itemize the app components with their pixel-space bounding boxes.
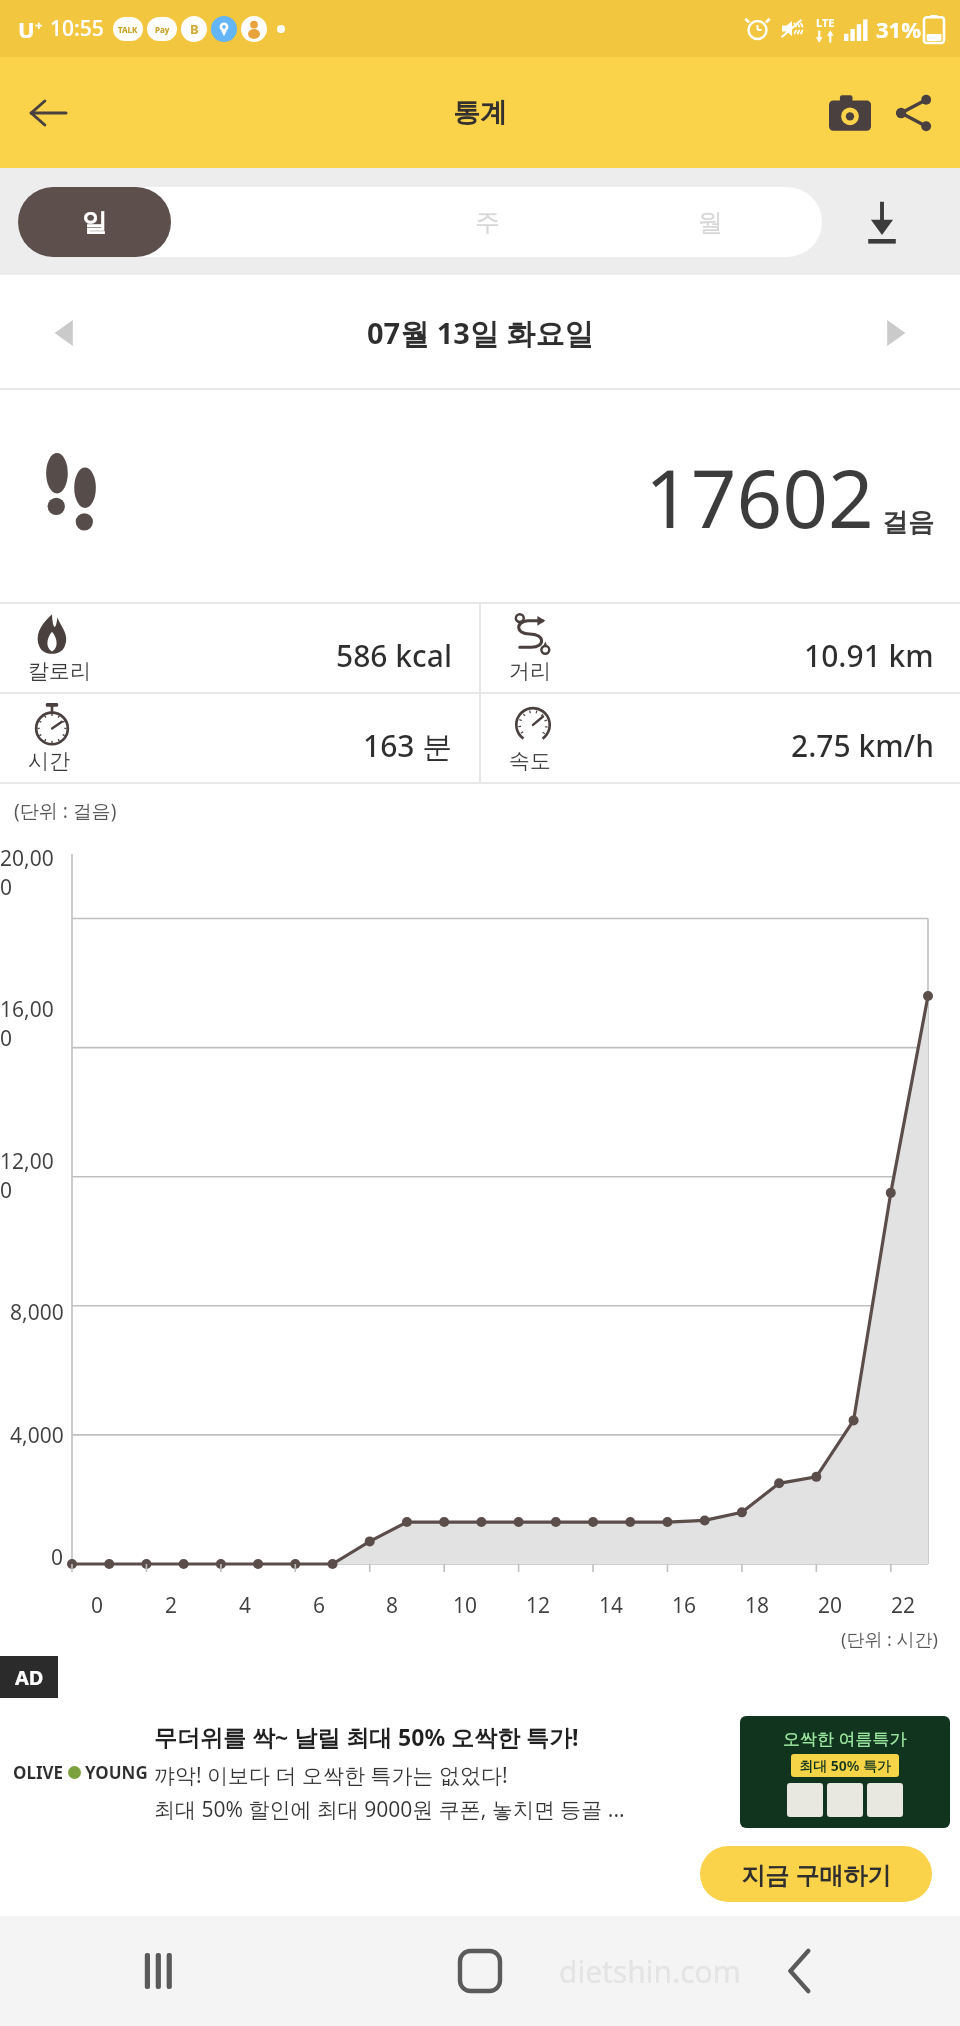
- staticText: 07월 13일 화요일: [367, 313, 594, 353]
- staticText: 4,000: [10, 1421, 64, 1450]
- staticText: B: [190, 20, 199, 38]
- staticText: 칼로리: [28, 658, 91, 684]
- staticText: 10:55: [50, 14, 104, 43]
- staticText: 최대 50% 특가: [799, 1756, 891, 1775]
- button[interactable]: 주: [376, 187, 599, 257]
- button[interactable]: 거리: [481, 604, 960, 692]
- staticText: 오싹한 여름특가: [783, 1727, 907, 1750]
- staticText: 16,000: [0, 995, 64, 1053]
- staticText: 22: [891, 1591, 916, 1620]
- staticText: 586 kcal: [336, 635, 453, 676]
- staticText: 14: [599, 1591, 624, 1620]
- button[interactable]: Previous day: [34, 302, 96, 364]
- staticText: 주: [475, 207, 500, 238]
- staticText: 월: [698, 207, 723, 238]
- button[interactable]: 오싹한 여름특가: [740, 1716, 950, 1828]
- button[interactable]: 일: [153, 187, 376, 257]
- staticText: 걸음: [882, 506, 934, 539]
- staticText: 31%: [876, 14, 922, 44]
- staticText: OLIVE: [13, 1761, 64, 1784]
- staticText: 20: [818, 1591, 843, 1620]
- staticText: Pay: [155, 24, 170, 35]
- button[interactable]: Recents: [0, 1916, 320, 2026]
- staticText: 최대 50% 할인에 최대 9000원 쿠폰, 놓치면 등골 ...: [154, 1795, 625, 1824]
- staticText: 2: [165, 1591, 178, 1620]
- staticText: LTE: [816, 15, 835, 30]
- staticText: 0: [51, 1543, 64, 1572]
- staticText: 꺄악! 이보다 더 오싹한 특가는 없었다!: [154, 1761, 508, 1790]
- button[interactable]: Next day: [864, 302, 926, 364]
- staticText: 통계: [453, 96, 507, 130]
- button[interactable]: Back: [18, 83, 78, 143]
- button[interactable]: Back: [640, 1916, 960, 2026]
- button[interactable]: Home: [320, 1916, 640, 2026]
- staticText: dietshin.com: [559, 1951, 741, 1992]
- staticText: AD: [15, 1664, 44, 1691]
- staticText: TALK: [118, 24, 138, 35]
- button[interactable]: 일: [18, 187, 171, 257]
- staticText: 10: [453, 1591, 478, 1620]
- button[interactable]: Share: [882, 81, 946, 145]
- staticText: 거리: [509, 658, 551, 684]
- staticText: 무더위를 싹~ 날릴 최대 50% 오싹한 특가!: [154, 1721, 579, 1752]
- staticText: 시간: [28, 748, 70, 774]
- button[interactable]: 지금 구매하기: [700, 1846, 932, 1902]
- button[interactable]: 월: [599, 187, 822, 257]
- staticText: 일: [82, 207, 107, 238]
- staticText: U: [18, 14, 35, 44]
- staticText: 12: [526, 1591, 551, 1620]
- staticText: 지금 구매하기: [741, 1858, 892, 1891]
- staticText: 17602: [645, 442, 874, 551]
- staticText: 163 분: [363, 725, 453, 766]
- staticText: 16: [672, 1591, 697, 1620]
- button[interactable]: 시간: [0, 694, 479, 782]
- staticText: 2.75 km/h: [791, 725, 934, 766]
- staticText: (단위 : 걸음): [14, 798, 117, 824]
- button[interactable]: 속도: [481, 694, 960, 782]
- button[interactable]: Camera: [818, 81, 882, 145]
- staticText: 8: [386, 1591, 399, 1620]
- staticText: +: [35, 16, 43, 34]
- staticText: 18: [745, 1591, 770, 1620]
- staticText: 0: [91, 1591, 104, 1620]
- staticText: 6: [313, 1591, 326, 1620]
- staticText: 10.91 km: [804, 635, 934, 676]
- staticText: 12,000: [0, 1147, 64, 1205]
- staticText: (단위 : 시간): [841, 1627, 938, 1652]
- button[interactable]: 칼로리: [0, 604, 479, 692]
- staticText: 속도: [509, 748, 551, 774]
- staticText: YOUNG: [85, 1761, 148, 1784]
- staticText: 20,000: [0, 844, 64, 902]
- button[interactable]: Download: [822, 168, 942, 275]
- staticText: 4: [239, 1591, 252, 1620]
- staticText: 8,000: [10, 1298, 64, 1327]
